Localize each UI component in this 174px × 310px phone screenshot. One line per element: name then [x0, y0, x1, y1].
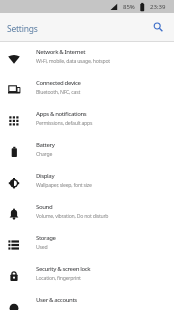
- button[interactable]: Battery: [0, 136, 174, 167]
- staticText: Volume, vibration, Do not disturb: [36, 212, 109, 219]
- button[interactable]: Apps & notifications: [0, 105, 174, 136]
- staticText: Location, fingerprint: [36, 274, 81, 281]
- staticText: Security & screen lock: [36, 265, 91, 273]
- button[interactable]: Connected device: [0, 74, 174, 105]
- staticText: Charge: [36, 150, 53, 157]
- staticText: Connected device: [36, 79, 81, 87]
- staticText: Settings: [7, 23, 38, 35]
- button[interactable]: Sound: [0, 198, 174, 229]
- staticText: Used: [36, 243, 48, 250]
- staticText: Apps & notifications: [36, 110, 87, 118]
- staticText: User & accounts: [36, 296, 77, 304]
- button[interactable]: Security & screen lock: [0, 260, 174, 291]
- button[interactable]: [152, 21, 165, 34]
- button[interactable]: Storage: [0, 229, 174, 260]
- staticText: Bluetooth, NFC, cast: [36, 88, 81, 95]
- staticText: Wi-Fi, mobile, data usage, hotspot: [36, 57, 110, 64]
- staticText: 23:39: [150, 3, 166, 11]
- button[interactable]: User & accounts: [0, 291, 174, 310]
- staticText: Display: [36, 172, 55, 180]
- staticText: Battery: [36, 141, 55, 149]
- staticText: Sound: [36, 203, 53, 211]
- staticText: Wallpaper, sleep, font size: [36, 181, 92, 188]
- staticText: Storage: [36, 234, 56, 242]
- staticText: Network & Internet: [36, 48, 86, 56]
- button[interactable]: Network & Internet: [0, 43, 174, 74]
- button[interactable]: Display: [0, 167, 174, 198]
- staticText: Permissions, default apps: [36, 119, 93, 126]
- staticText: 85%: [123, 3, 135, 11]
